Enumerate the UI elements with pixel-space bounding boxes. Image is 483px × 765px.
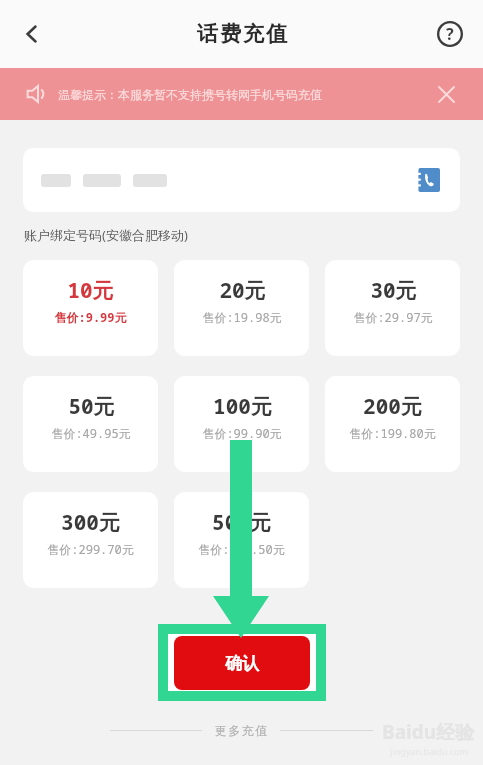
staticText: 售价:199.80元 bbox=[349, 425, 436, 441]
staticText: 售价:99.90元 bbox=[202, 425, 282, 441]
button[interactable]: 10元 bbox=[23, 260, 158, 356]
staticText: 200元 bbox=[363, 392, 422, 421]
button[interactable]: Help bbox=[427, 11, 473, 57]
button[interactable]: 20元 bbox=[174, 260, 309, 356]
button[interactable]: 200元 bbox=[325, 376, 460, 472]
button[interactable]: Choose contact bbox=[414, 166, 442, 194]
staticText: 售价:299.70元 bbox=[47, 541, 134, 557]
button[interactable]: 300元 bbox=[23, 492, 158, 588]
staticText: jingyan.baidu.com bbox=[390, 745, 468, 757]
button[interactable]: 50元 bbox=[23, 376, 158, 472]
staticText: 售价:9.99元 bbox=[54, 309, 127, 325]
button[interactable]: 确认 bbox=[174, 636, 310, 690]
button[interactable]: Choose contact bbox=[23, 148, 460, 212]
staticText: 10元 bbox=[67, 276, 114, 305]
staticText: 确认 bbox=[225, 653, 259, 674]
staticText: 温馨提示：本服务暂不支持携号转网手机号码充值 bbox=[58, 87, 322, 102]
staticText: 50元 bbox=[68, 392, 115, 421]
button[interactable]: Close bbox=[431, 79, 461, 109]
staticText: 更多充值 bbox=[214, 723, 268, 738]
button[interactable]: 500元 bbox=[174, 492, 309, 588]
staticText: 100元 bbox=[213, 392, 272, 421]
staticText: 账户绑定号码(安徽合肥移动) bbox=[24, 226, 188, 244]
button[interactable]: 100元 bbox=[174, 376, 309, 472]
button[interactable]: 30元 bbox=[325, 260, 460, 356]
staticText: 300元 bbox=[61, 508, 120, 537]
staticText: Baidu经验 bbox=[382, 719, 475, 745]
staticText: 售价:499.50元 bbox=[198, 541, 285, 557]
staticText: 30元 bbox=[370, 276, 417, 305]
staticText: ? bbox=[446, 23, 454, 45]
staticText: 售价:19.98元 bbox=[202, 309, 282, 325]
staticText: 售价:29.97元 bbox=[353, 309, 433, 325]
staticText: 话费充值 bbox=[196, 21, 288, 47]
button[interactable]: Back bbox=[8, 10, 56, 58]
staticText: 20元 bbox=[219, 276, 266, 305]
staticText: 售价:49.95元 bbox=[51, 425, 131, 441]
staticText: 500元 bbox=[212, 508, 271, 537]
